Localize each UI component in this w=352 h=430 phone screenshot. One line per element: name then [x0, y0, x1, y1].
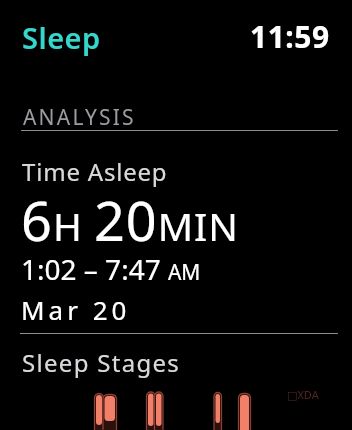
staticText: 1:02 – 7:47 AM: [21, 250, 201, 288]
button[interactable]: Sleep: [0, 0, 79, 39]
staticText: 6H 20MIN: [21, 183, 239, 257]
staticText: ANALYSIS: [23, 103, 136, 132]
staticText: □XDA: [287, 387, 319, 402]
staticText: Time Asleep: [22, 155, 168, 188]
staticText: Mar 20: [21, 292, 131, 327]
button[interactable]: Sleep Stages: [0, 0, 159, 33]
staticText: 11:59: [250, 16, 330, 57]
